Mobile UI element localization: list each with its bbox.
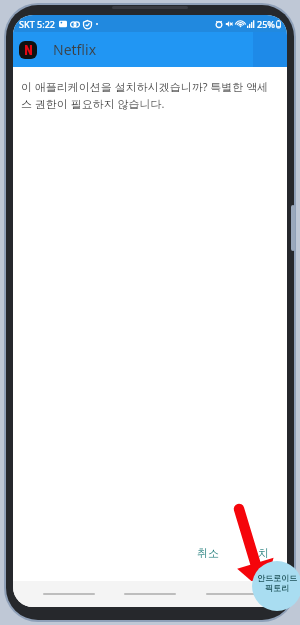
staticText: 이 애플리케이션을 설치하시겠습니까? 특별한 액세스 권한이 필요하지 않습니…	[21, 79, 277, 111]
staticText: 설치	[247, 546, 269, 560]
button[interactable]: Navigation	[206, 593, 258, 595]
staticText: 25%	[257, 18, 275, 30]
staticText: 픽토리	[265, 583, 289, 593]
staticText: 취소	[197, 546, 219, 560]
staticText: Netflix	[53, 40, 97, 59]
button[interactable]: 취소	[189, 543, 227, 563]
staticText: 안드로이드	[257, 573, 297, 583]
staticText: SKT 5:22	[19, 18, 55, 30]
button[interactable]: 설치	[239, 543, 277, 563]
